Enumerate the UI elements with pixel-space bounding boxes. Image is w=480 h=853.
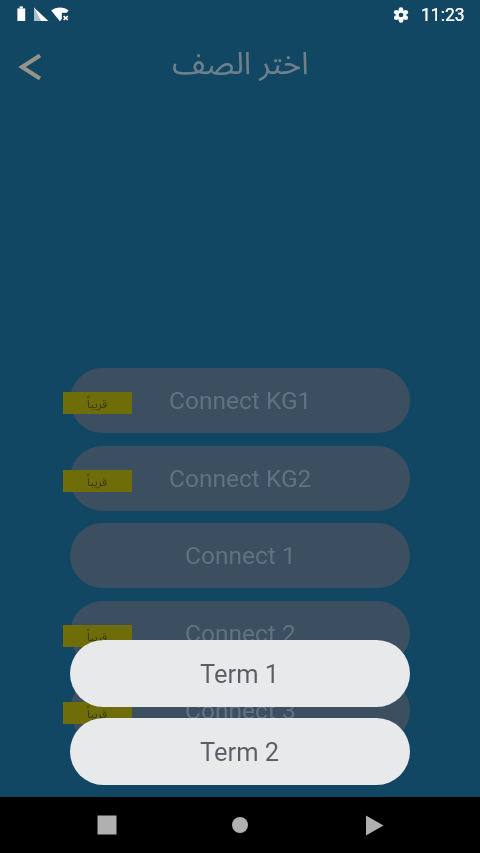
button[interactable]: Term 1 <box>70 640 410 707</box>
staticText: Term 1 <box>200 659 280 689</box>
button[interactable]: Term 2 <box>70 718 410 785</box>
staticText: Connect KG1 <box>169 386 312 415</box>
button[interactable]: Connect 1 <box>70 523 410 588</box>
staticText: قريباً <box>87 470 108 492</box>
staticText: Connect KG2 <box>169 464 312 493</box>
button[interactable]: Home <box>216 801 264 849</box>
staticText: Connect 1 <box>185 541 296 570</box>
staticText: Connect 3 <box>185 696 296 725</box>
staticText: 11:23 <box>421 5 465 26</box>
staticText: قريباً <box>87 625 108 647</box>
staticText: Connect 2 <box>185 619 296 648</box>
staticText: قريباً <box>87 392 108 414</box>
button[interactable]: Connect KG1 <box>70 368 410 433</box>
staticText: اختر الصف <box>172 31 309 96</box>
button[interactable]: Connect 2 <box>70 601 410 666</box>
button[interactable]: Back <box>352 801 400 849</box>
button[interactable]: Connect KG2 <box>70 446 410 511</box>
staticText: قريباً <box>87 702 108 724</box>
button[interactable]: Back <box>10 43 58 91</box>
button[interactable]: Connect 3 <box>70 678 410 743</box>
staticText: Term 2 <box>200 737 280 767</box>
button[interactable]: Recent apps <box>83 801 131 849</box>
